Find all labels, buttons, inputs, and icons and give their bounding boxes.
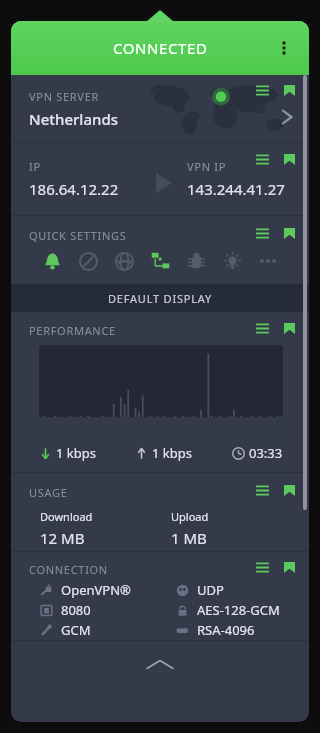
staticText: Download xyxy=(40,509,93,524)
staticText: 1 MB xyxy=(171,528,207,548)
button[interactable]: Bookmark xyxy=(279,318,299,338)
staticText: 1 kbps xyxy=(56,444,96,462)
button[interactable]: DEFAULT DISPLAY xyxy=(11,284,309,312)
button[interactable]: More xyxy=(253,246,283,276)
button[interactable]: Bookmark xyxy=(279,223,299,243)
button[interactable]: Bookmark xyxy=(279,480,299,500)
button[interactable]: USAGE xyxy=(11,473,309,551)
button[interactable]: Block xyxy=(73,246,103,276)
button[interactable]: CONNECTED xyxy=(11,21,309,75)
staticText: AES-128-GCM xyxy=(197,601,280,619)
staticText: CONNECTION xyxy=(29,562,108,577)
staticText: 03:33 xyxy=(249,444,283,462)
staticText: UDP xyxy=(197,581,224,599)
button[interactable]: Notifications xyxy=(37,246,67,276)
staticText: Netherlands xyxy=(29,109,118,129)
staticText: PERFORMANCE xyxy=(29,323,116,338)
button[interactable]: CONNECTION xyxy=(11,552,309,640)
staticText: DEFAULT DISPLAY xyxy=(108,291,213,306)
button[interactable]: Network xyxy=(145,246,175,276)
button[interactable]: Bookmark xyxy=(279,149,299,169)
button[interactable]: Collapse xyxy=(11,641,309,687)
staticText: VPN IP xyxy=(187,159,227,174)
staticText: 1 kbps xyxy=(152,444,192,462)
staticText: OpenVPN® xyxy=(61,581,131,599)
staticText: RSA-4096 xyxy=(197,621,255,639)
staticText: GCM xyxy=(61,621,91,639)
button[interactable]: Menu xyxy=(252,80,272,100)
staticText: 143.244.41.27 xyxy=(187,179,285,199)
staticText: 12 MB xyxy=(40,528,85,548)
button[interactable]: Brightness xyxy=(217,246,247,276)
button[interactable]: IP xyxy=(11,143,309,215)
staticText: USAGE xyxy=(29,485,68,500)
button[interactable]: Bookmark xyxy=(279,80,299,100)
button[interactable]: Menu xyxy=(252,223,272,243)
staticText: QUICK SETTINGS xyxy=(29,228,127,243)
button[interactable]: Menu xyxy=(252,480,272,500)
staticText: Upload xyxy=(171,509,209,524)
button[interactable]: Menu xyxy=(252,149,272,169)
button[interactable]: Menu xyxy=(252,557,272,577)
staticText: 186.64.12.22 xyxy=(29,179,119,199)
staticText: VPN SERVER xyxy=(29,89,100,104)
button[interactable]: Globe xyxy=(109,246,139,276)
button[interactable]: Bookmark xyxy=(279,557,299,577)
button[interactable]: VPN SERVER xyxy=(11,75,309,142)
staticText: 8080 xyxy=(61,601,91,619)
staticText: CONNECTED xyxy=(113,38,208,58)
button[interactable]: Menu xyxy=(252,318,272,338)
button[interactable]: Debug xyxy=(181,246,211,276)
staticText: IP xyxy=(29,159,41,174)
button[interactable]: More options xyxy=(267,31,301,65)
